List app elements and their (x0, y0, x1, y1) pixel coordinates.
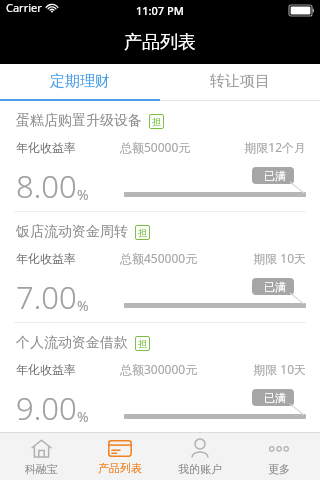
button[interactable]: 我的账户 (161, 433, 239, 480)
button[interactable]: 饭店流动资金周转 (0, 212, 320, 322)
staticText: 担 (138, 227, 147, 238)
staticText: 年化收益率 (16, 362, 120, 377)
staticText: 总额450000元 (120, 250, 253, 266)
staticText: 定期理财 (50, 72, 110, 91)
staticText: 科融宝 (25, 462, 58, 476)
staticText: % (77, 296, 89, 315)
staticText: 期限 10天 (253, 250, 306, 266)
button[interactable]: 转让项目 (160, 64, 320, 99)
staticText: 8.00 (16, 165, 77, 207)
staticText: 期限 10天 (253, 361, 306, 377)
staticText: 产品列表 (98, 461, 142, 475)
button[interactable]: 个人流动资金借款 (0, 323, 320, 433)
staticText: 总额50000元 (120, 139, 244, 155)
staticText: 已满 (264, 280, 286, 294)
staticText: 担 (138, 338, 147, 349)
staticText: 总额300000元 (120, 361, 253, 377)
staticText: Carrier (6, 0, 42, 15)
staticText: 期限12个月 (244, 139, 306, 155)
button[interactable]: 产品列表 (81, 433, 159, 480)
staticText: 蛋糕店购置升级设备 (16, 112, 142, 130)
other: 更多 (267, 439, 291, 458)
staticText: 9.00 (16, 387, 77, 429)
staticText: 年化收益率 (16, 140, 120, 155)
staticText: 产品列表 (124, 31, 196, 54)
staticText: 更多 (268, 462, 290, 476)
staticText: 年化收益率 (16, 251, 120, 266)
button[interactable]: 更多 (240, 433, 318, 480)
staticText: 已满 (264, 391, 286, 405)
button[interactable]: 定期理财 (0, 64, 160, 99)
staticText: 已满 (264, 169, 286, 183)
staticText: 11:07 PM (136, 3, 184, 18)
staticText: 7.00 (16, 276, 77, 318)
staticText: 担 (152, 116, 161, 127)
other: 产品列表 (108, 440, 132, 457)
staticText: 转让项目 (210, 72, 270, 91)
other: 科融宝 (31, 439, 52, 458)
button[interactable]: 蛋糕店购置升级设备 (0, 101, 320, 211)
staticText: 我的账户 (178, 462, 222, 476)
staticText: % (77, 185, 89, 204)
staticText: 饭店流动资金周转 (16, 223, 128, 241)
staticText: 个人流动资金借款 (16, 334, 128, 352)
staticText: % (77, 407, 89, 426)
button[interactable]: 科融宝 (2, 433, 80, 480)
other: 我的账户 (190, 439, 210, 458)
